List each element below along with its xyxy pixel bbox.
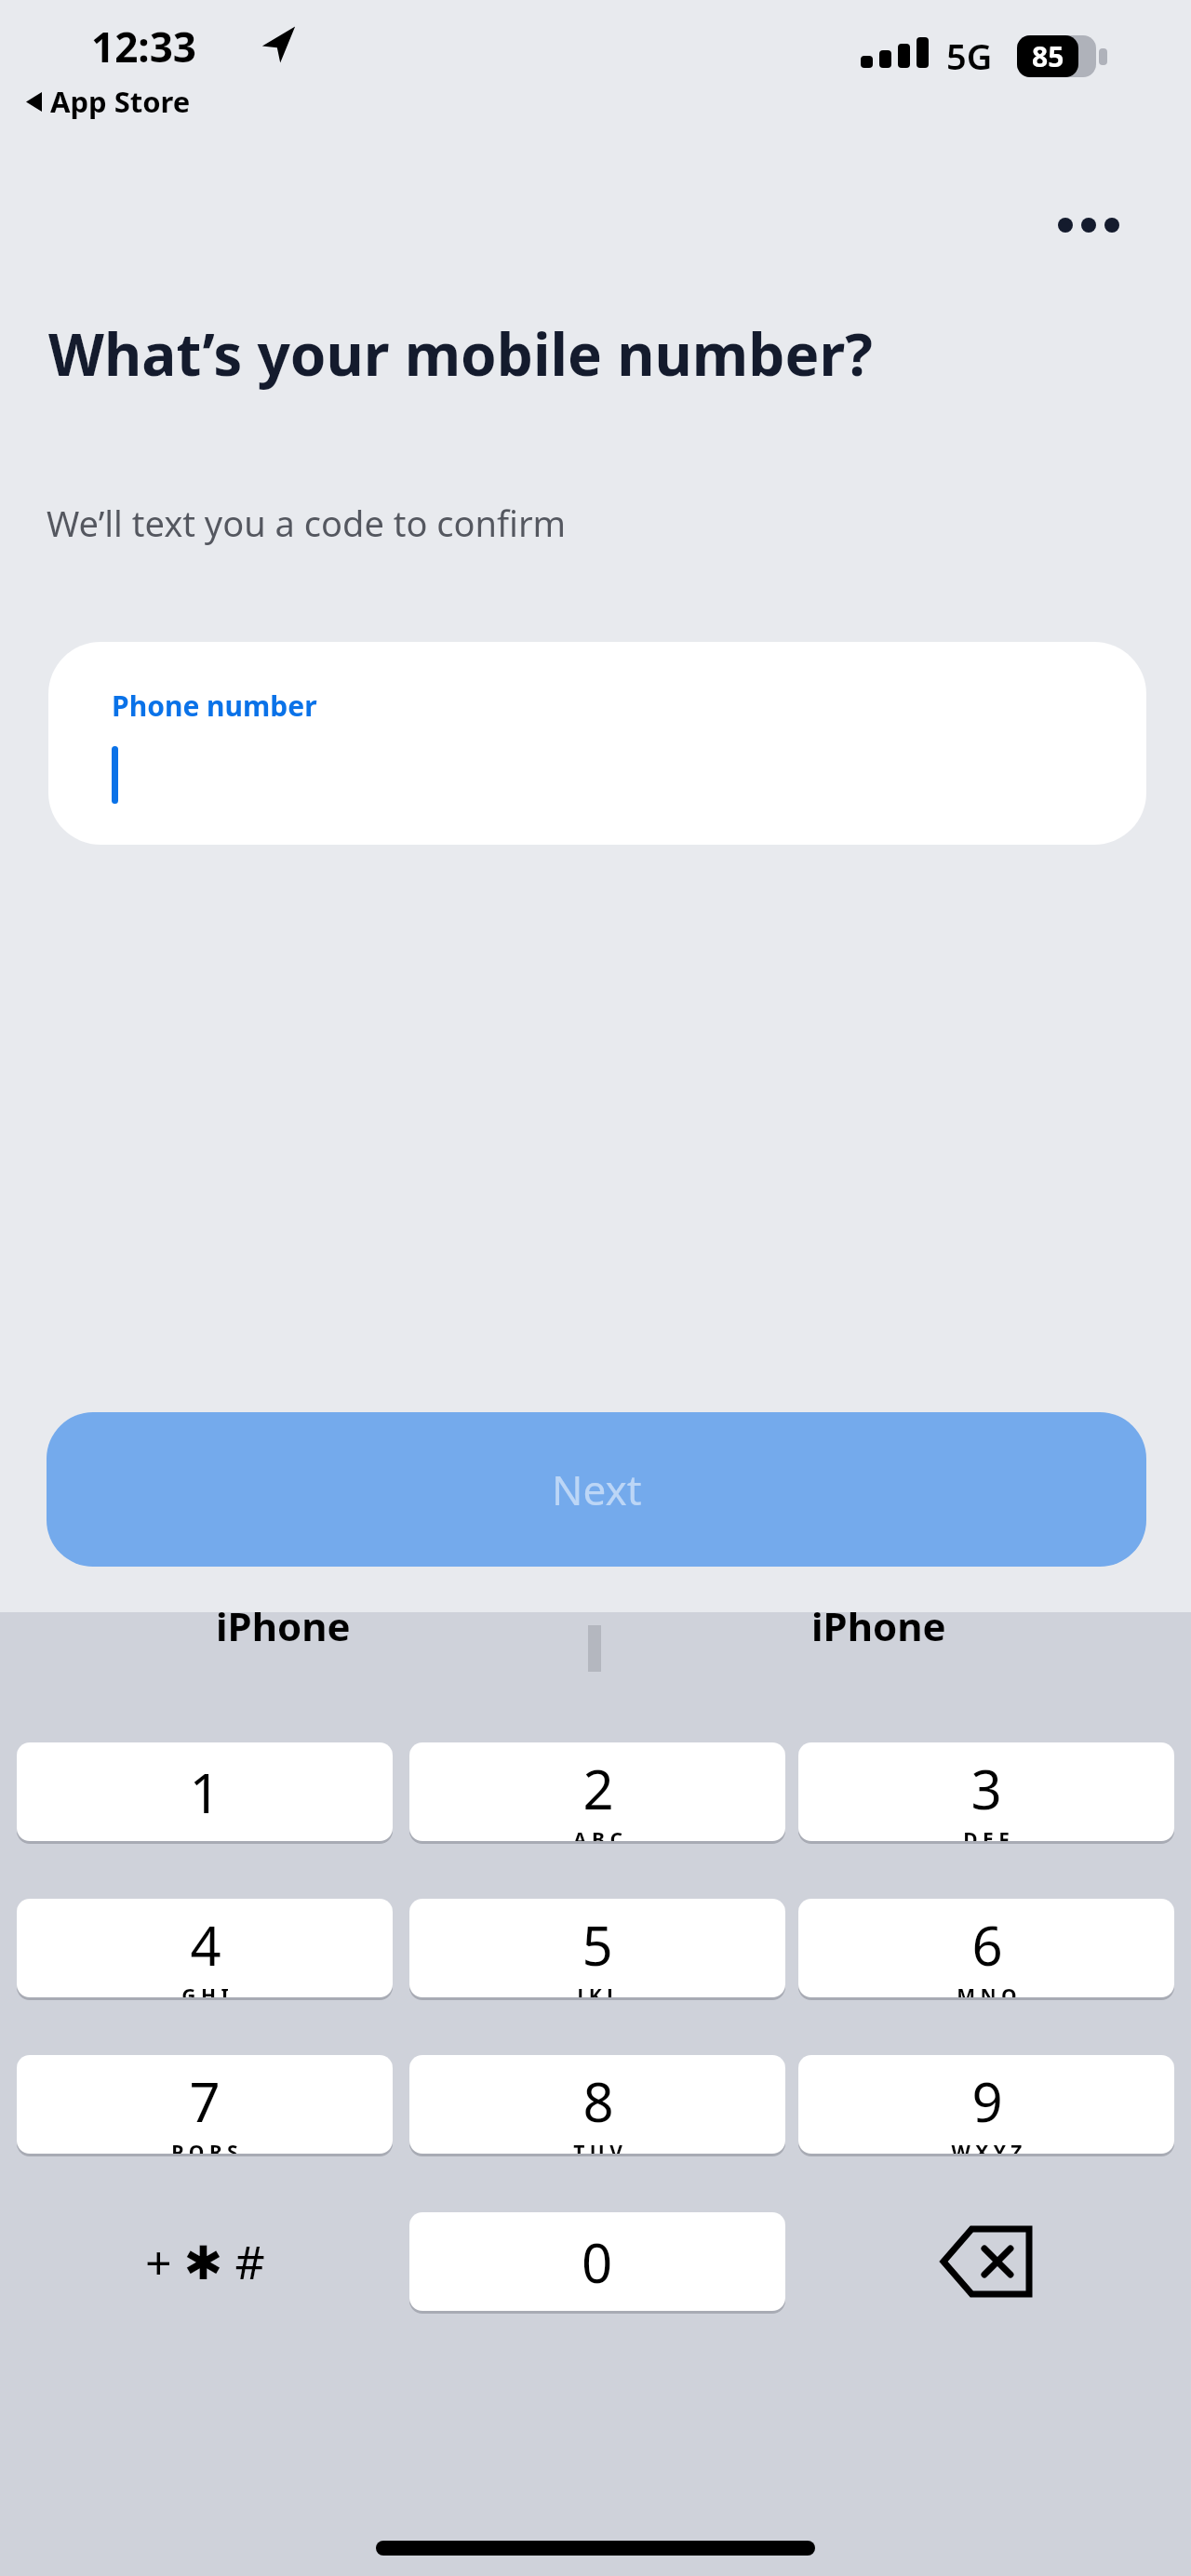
button[interactable]: 0 [409,2212,785,2311]
button[interactable]: Phone number [48,642,1146,845]
staticText: App Store [50,82,191,121]
staticText: 8 [582,2064,614,2138]
button[interactable]: 5 [409,1899,785,1997]
button[interactable]: 6 [798,1899,1174,1997]
button[interactable]: 2 [409,1742,785,1841]
staticText: G H I [181,1982,229,1997]
button[interactable]: Next [47,1412,1146,1567]
button[interactable]: 4 [17,1899,393,1997]
staticText: 0 [582,2225,613,2299]
button[interactable]: Backspace [798,2212,1174,2311]
button[interactable]: 8 [409,2055,785,2154]
staticText: D E F [963,1826,1010,1841]
staticText: 7 [189,2064,221,2138]
staticText: 2 [582,1752,614,1825]
button[interactable]: 1 [17,1742,393,1841]
staticText: iPhone [216,1599,351,1652]
button[interactable]: More options [1048,195,1130,255]
staticText: + ✱ # [145,2230,265,2293]
staticText: T U V [573,2139,622,2154]
staticText: We’ll text you a code to confirm [47,499,567,547]
staticText: Next [552,1462,642,1517]
button[interactable]: + ✱ # [17,2212,393,2311]
staticText: 85 [1032,37,1064,75]
staticText: 4 [190,1908,221,1982]
staticText: 9 [971,2064,1003,2138]
staticText: iPhone [811,1599,946,1652]
staticText: 5G [946,32,993,80]
staticText: A B C [573,1826,622,1841]
staticText: 6 [971,1908,1003,1982]
staticText: 5 [582,1908,613,1982]
staticText: 3 [970,1752,1002,1825]
staticText: M N O [957,1982,1017,1997]
staticText: What’s your mobile number? [48,314,873,393]
staticText: 1 [189,1755,221,1829]
button[interactable]: 3 [798,1742,1174,1841]
staticText: 12:33 [91,19,197,74]
staticText: P Q R S [171,2139,238,2154]
staticText: W X Y Z [951,2139,1023,2154]
staticText: J K L [577,1982,618,1997]
staticText: Phone number [112,687,317,725]
button[interactable]: 7 [17,2055,393,2154]
button[interactable]: 9 [798,2055,1174,2154]
